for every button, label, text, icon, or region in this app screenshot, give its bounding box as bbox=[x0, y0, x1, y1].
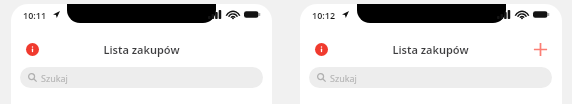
button[interactable]: Info bbox=[308, 36, 334, 62]
staticText: Lista zakupów bbox=[392, 42, 469, 57]
button[interactable]: Info bbox=[19, 36, 45, 62]
staticText: Szukaj bbox=[41, 72, 68, 84]
button[interactable]: Add item bbox=[527, 36, 553, 62]
button[interactable]: Szukaj bbox=[20, 67, 263, 88]
staticText: 10:11 bbox=[23, 9, 47, 21]
staticText: Szukaj bbox=[330, 72, 357, 84]
button[interactable]: Szukaj bbox=[309, 67, 552, 88]
staticText: 10:12 bbox=[312, 9, 336, 21]
staticText: Lista zakupów bbox=[103, 42, 180, 57]
